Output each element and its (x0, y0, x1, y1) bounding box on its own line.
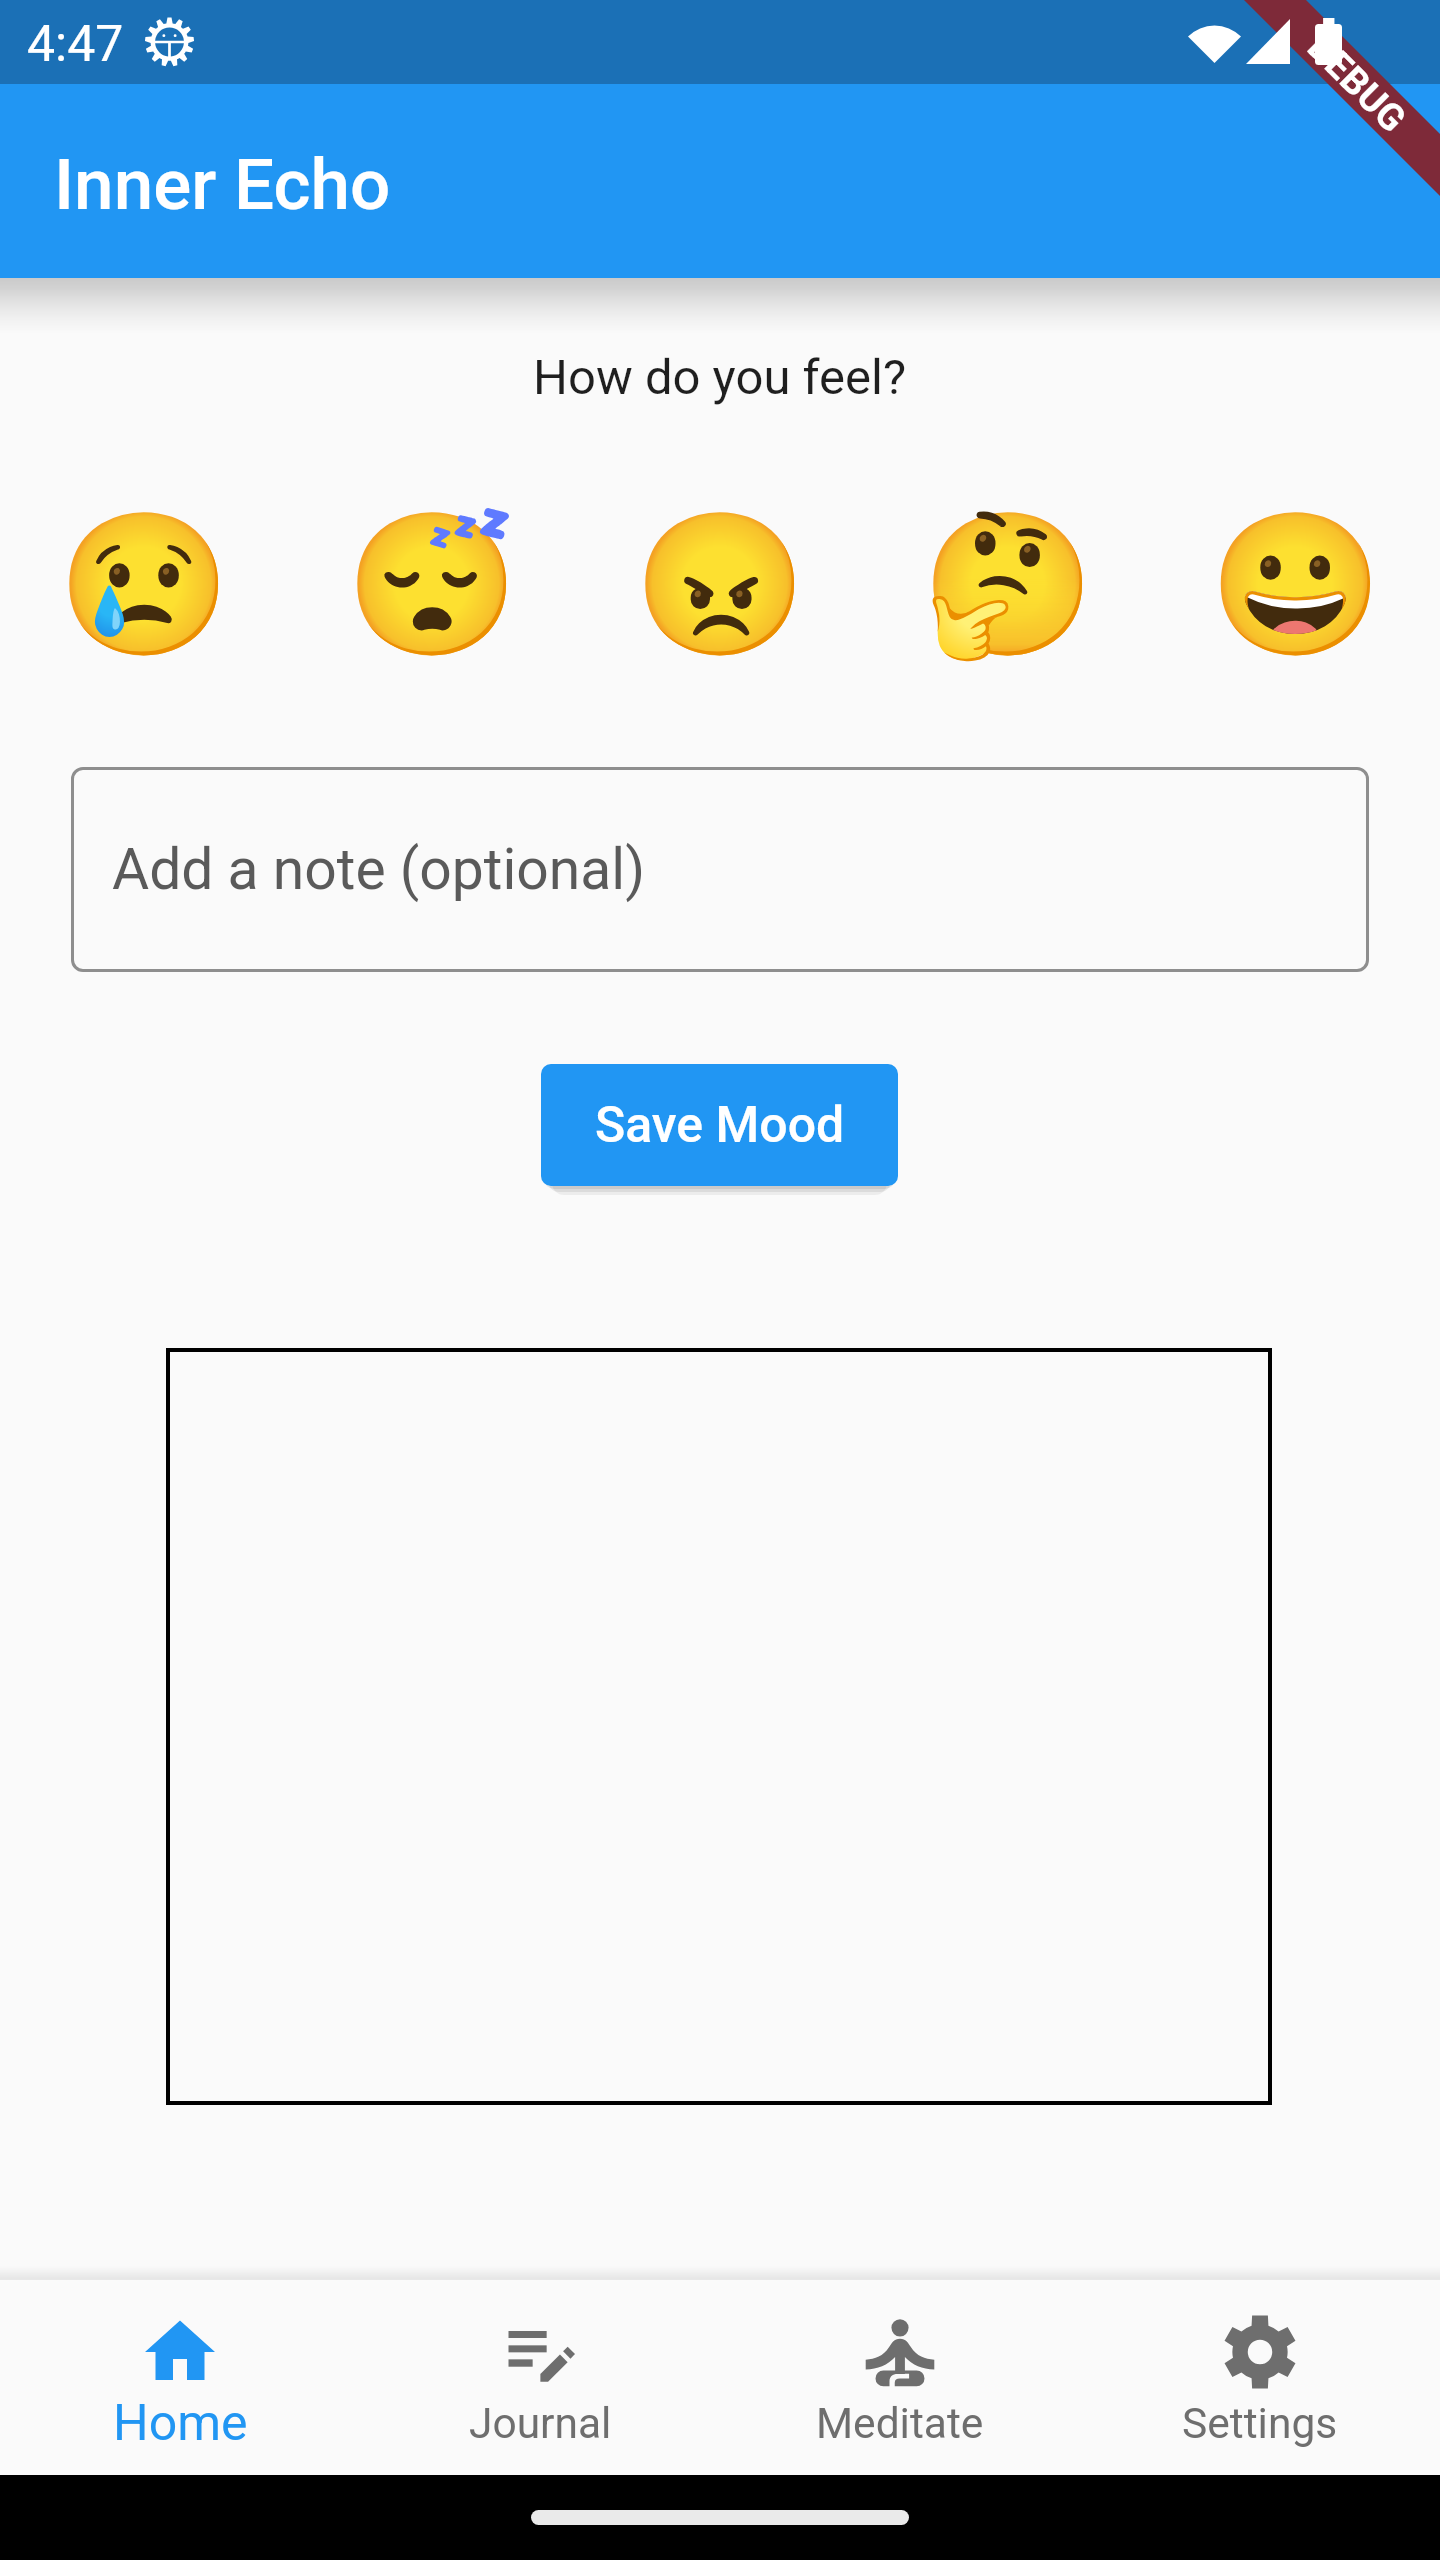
button[interactable]: Sad (57, 502, 217, 668)
button[interactable]: Home (0, 2280, 360, 2475)
staticText: How do you feel? (533, 349, 907, 406)
staticText: 😀 (1209, 503, 1369, 667)
staticText: DEBUG (1299, 26, 1415, 142)
button[interactable]: Meditate (720, 2280, 1080, 2475)
staticText: 😠 (633, 503, 793, 667)
button[interactable]: Angry (633, 502, 793, 668)
button[interactable]: Happy (1209, 502, 1369, 668)
staticText: Meditate (816, 2399, 984, 2449)
staticText: Settings (1182, 2399, 1338, 2449)
button[interactable]: Settings (1080, 2280, 1440, 2475)
staticText: 😴 (345, 503, 505, 667)
staticText: Inner Echo (54, 143, 391, 226)
staticText: Home (113, 2394, 248, 2453)
staticText: Save Mood (595, 1096, 845, 1155)
staticText: 4:47 (27, 15, 124, 74)
staticText: 😢 (57, 503, 217, 667)
button[interactable]: Tired (345, 502, 505, 668)
button[interactable]: Save Mood (541, 1064, 898, 1186)
staticText: Add a note (optional) (112, 836, 645, 903)
staticText: 🤔 (921, 503, 1081, 667)
staticText: Journal (469, 2399, 612, 2449)
button[interactable]: Journal (360, 2280, 720, 2475)
button[interactable]: Thoughtful (921, 502, 1081, 668)
button[interactable]: Add a note (optional) (71, 767, 1369, 972)
